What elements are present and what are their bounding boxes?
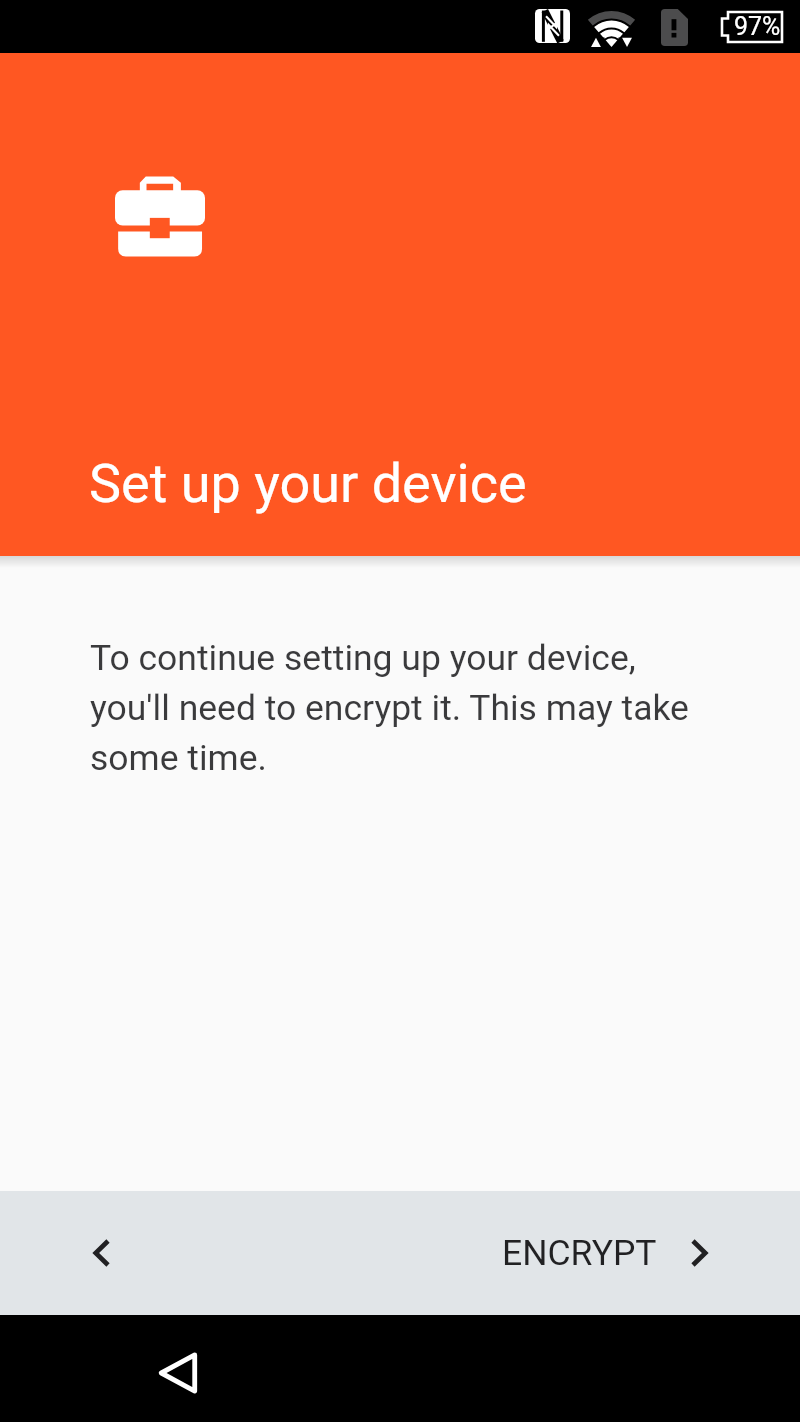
staticText: To continue setting up your device, you'… (90, 637, 710, 779)
staticText: 97% (734, 12, 781, 41)
staticText: ENCRYPT (502, 1232, 657, 1274)
button[interactable]: ENCRYPT (502, 1232, 716, 1274)
button[interactable]: Back (140, 1335, 215, 1410)
staticText: Set up your device (89, 452, 527, 515)
button[interactable]: Previous (66, 1217, 138, 1289)
